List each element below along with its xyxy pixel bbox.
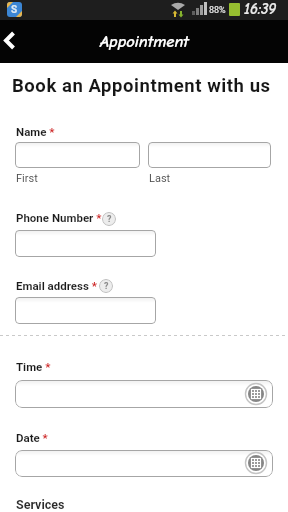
staticText: 16:39 — [244, 0, 277, 17]
staticText: 88% — [209, 5, 226, 16]
staticText: Date * — [16, 431, 48, 444]
staticText: ? — [104, 281, 109, 292]
staticText: S — [11, 4, 18, 16]
staticText: Time * — [16, 360, 51, 373]
staticText: Last — [149, 172, 171, 185]
staticText: Book an Appointment with us — [12, 75, 271, 97]
staticText: Services — [16, 497, 65, 512]
staticText: Phone Number * — [16, 211, 102, 224]
button[interactable] — [15, 380, 273, 408]
staticText: Email address * — [16, 279, 97, 292]
staticText: First — [16, 172, 38, 185]
staticText: Appointment — [100, 32, 189, 51]
staticText: Name * — [16, 125, 55, 138]
button[interactable] — [0, 20, 28, 63]
button[interactable] — [15, 450, 273, 477]
button[interactable] — [15, 230, 156, 257]
button[interactable] — [148, 142, 271, 168]
button[interactable] — [15, 142, 140, 168]
staticText: ? — [107, 214, 112, 225]
button[interactable] — [15, 297, 156, 324]
